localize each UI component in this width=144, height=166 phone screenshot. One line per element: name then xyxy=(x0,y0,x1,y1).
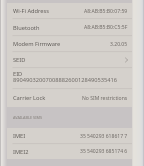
staticText: A8:AB:B5:B0:C5:5F xyxy=(84,24,128,31)
staticText: AVAILABLE SIMS xyxy=(13,115,42,120)
button[interactable]: IMEI xyxy=(7,128,132,144)
staticText: IMEI xyxy=(13,132,26,140)
staticText: Wi-Fi Address xyxy=(13,7,50,15)
staticText: 35 540293 685174 6 xyxy=(80,148,128,155)
button[interactable]: IMEI2 xyxy=(7,144,132,159)
button[interactable]: Carrier Lock xyxy=(7,89,132,107)
staticText: Carrier Lock xyxy=(13,94,46,102)
staticText: IMEI2 xyxy=(13,148,29,156)
staticText: Bluetooth xyxy=(13,24,40,32)
staticText: No SIM restrictions xyxy=(82,95,128,102)
staticText: A8:AB:B5:B0:07:59 xyxy=(84,8,128,15)
staticText: SEID xyxy=(13,56,26,64)
button[interactable]: Modem Firmware xyxy=(7,36,132,52)
staticText: EID xyxy=(13,70,23,78)
staticText: 35 540293 618617 7 xyxy=(80,133,128,140)
staticText: 89049032007008882600128490535416 xyxy=(13,76,118,84)
button[interactable]: Bluetooth xyxy=(7,19,132,36)
button[interactable]: EID xyxy=(7,68,132,89)
button[interactable]: Wi-Fi Address xyxy=(7,3,132,19)
staticText: 3.20.05 xyxy=(110,41,128,48)
staticText: Modem Firmware xyxy=(13,40,61,48)
button[interactable]: SEID xyxy=(7,52,132,68)
